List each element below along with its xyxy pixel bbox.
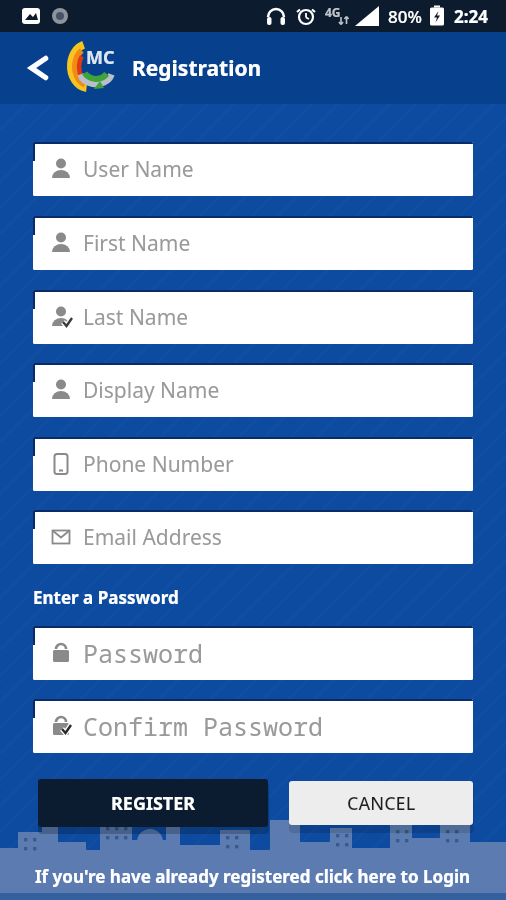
button[interactable]: Confirm Password — [33, 699, 473, 753]
staticText: Confirm Password — [83, 709, 324, 743]
button[interactable]: REGISTER — [38, 779, 268, 827]
staticText: 4G — [325, 4, 341, 20]
button[interactable]: CANCEL — [289, 781, 473, 825]
button[interactable]: User Name — [33, 142, 473, 196]
staticText: Last Name — [83, 303, 189, 332]
staticText: MC — [86, 45, 115, 70]
button[interactable]: Email Address — [33, 510, 473, 564]
staticText: REGISTER — [111, 791, 196, 816]
button[interactable]: Phone Number — [33, 437, 473, 491]
staticText: Display Name — [83, 376, 220, 405]
button[interactable] — [18, 47, 60, 89]
staticText: 2:24 — [454, 5, 488, 28]
staticText: Enter a Password — [33, 586, 179, 609]
staticText: 80% — [388, 5, 422, 28]
staticText: Registration — [132, 54, 262, 83]
staticText: Password — [83, 636, 204, 670]
button[interactable]: Display Name — [33, 363, 473, 417]
staticText: Email Address — [83, 523, 222, 552]
button[interactable]: If you're have already registered click … — [35, 865, 471, 888]
staticText: CANCEL — [347, 791, 416, 816]
staticText: First Name — [83, 229, 191, 258]
button[interactable]: Last Name — [33, 290, 473, 344]
staticText: Phone Number — [83, 450, 234, 479]
button[interactable]: Password — [33, 626, 473, 680]
staticText: User Name — [83, 155, 194, 184]
button[interactable]: First Name — [33, 216, 473, 270]
